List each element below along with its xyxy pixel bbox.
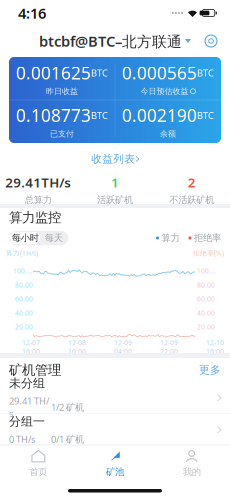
staticText: 0/1 矿机 — [51, 433, 84, 445]
staticText: 昨日收益 — [46, 86, 78, 96]
button[interactable]: 首页 — [0, 445, 77, 481]
button[interactable]: Settings — [198, 28, 224, 54]
staticText: 100.00 — [197, 267, 217, 275]
staticText: 1 — [111, 173, 119, 191]
staticText: 总算力 — [25, 194, 52, 206]
staticText: 活跃矿机 — [97, 194, 133, 206]
staticText: 16:00 — [206, 347, 224, 356]
staticText: 22:00 — [160, 347, 178, 356]
staticText: 0.000565 — [122, 61, 197, 84]
staticText: 80.00 — [15, 281, 33, 289]
staticText: 10:00 — [68, 347, 86, 356]
staticText: 已支付 — [50, 129, 74, 139]
staticText: BTC — [91, 67, 108, 79]
staticText: 更多 — [199, 363, 221, 376]
staticText: 矿池 — [106, 466, 124, 478]
button[interactable]: 更多 — [199, 360, 221, 380]
button[interactable]: 分组一 — [0, 414, 230, 446]
staticText: 60.00 — [197, 295, 215, 303]
staticText: BTC — [91, 109, 108, 121]
staticText: 未分组 — [9, 376, 45, 391]
staticText: 12-08 — [68, 338, 86, 347]
button[interactable]: btcbf@BTC–北方联通 — [33, 28, 197, 54]
staticText: 首页 — [29, 466, 47, 478]
staticText: 80.00 — [197, 281, 215, 289]
staticText: 分组一 — [9, 414, 45, 429]
staticText: 1/2 矿机 — [51, 401, 84, 413]
staticText: 算力 — [161, 232, 179, 244]
staticText: 拒绝率(%) — [193, 249, 224, 257]
staticText: 算力(TH/s) — [6, 249, 38, 257]
staticText: 40.00 — [197, 309, 215, 317]
staticText: 我的 — [183, 466, 201, 478]
staticText: 2 — [188, 173, 196, 191]
staticText: 今日预估收益 — [140, 86, 188, 96]
staticText: 12-07 — [22, 338, 40, 347]
staticText: 收益列表 — [91, 152, 135, 165]
staticText: 20.00 — [197, 323, 215, 331]
button[interactable]: 矿池 — [77, 445, 153, 481]
staticText: 12-10 — [206, 338, 224, 347]
staticText: 40.00 — [15, 309, 33, 317]
staticText: 算力监控 — [9, 209, 61, 226]
staticText: 4:16 — [18, 3, 46, 23]
button[interactable]: 每小时 — [10, 232, 40, 244]
staticText: BTC — [197, 67, 214, 79]
staticText: 04:00 — [114, 347, 132, 356]
staticText: 0 TH/s — [9, 433, 35, 445]
staticText: 29.41 TH/s — [9, 395, 49, 419]
staticText: 20.00 — [15, 323, 33, 331]
button[interactable]: 收益列表 — [0, 143, 230, 175]
staticText: 0.108773 — [16, 104, 91, 127]
staticText: 16:00 — [22, 347, 40, 356]
staticText: 不活跃矿机 — [169, 194, 214, 206]
staticText: 每天 — [45, 232, 63, 244]
staticText: 0.002190 — [122, 104, 197, 127]
staticText: 100.00 — [13, 267, 33, 275]
button[interactable]: 未分组 — [0, 382, 230, 414]
staticText: 余额 — [160, 129, 176, 139]
staticText: 12-09 — [114, 338, 132, 347]
button[interactable]: 我的 — [153, 445, 230, 481]
staticText: 0.001625 — [16, 61, 91, 84]
staticText: btcbf@BTC–北方联通 — [39, 31, 182, 51]
staticText: 29.41TH/s — [5, 173, 71, 191]
staticText: 每小时 — [12, 232, 39, 244]
staticText: 12-09 — [160, 338, 178, 347]
button[interactable]: 每天 — [40, 232, 67, 244]
staticText: 60.00 — [15, 295, 33, 303]
staticText: 拒绝率 — [194, 232, 221, 244]
staticText: 矿机管理 — [9, 362, 61, 378]
staticText: BTC — [197, 109, 214, 121]
